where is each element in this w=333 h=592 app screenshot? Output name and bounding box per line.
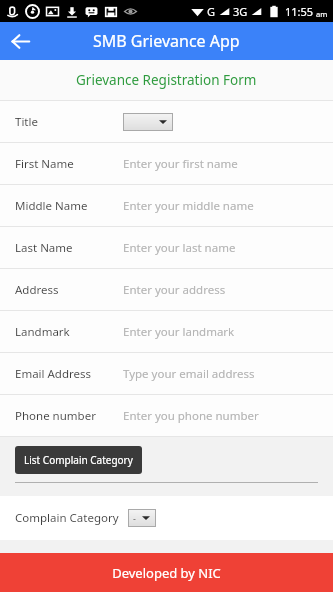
- button[interactable]: Last Name: [0, 227, 333, 268]
- staticText: First Name: [15, 156, 74, 172]
- button[interactable]: Address: [0, 269, 333, 310]
- button[interactable]: Middle Name: [0, 185, 333, 226]
- staticText: Last Name: [15, 240, 73, 256]
- staticText: Enter your first name: [123, 156, 238, 172]
- staticText: Enter your middle name: [123, 198, 254, 214]
- staticText: Enter your last name: [123, 240, 236, 256]
- staticText: am: [316, 9, 328, 19]
- staticText: Grievance Registration Form: [76, 71, 257, 89]
- staticText: List Complain Category: [24, 453, 133, 467]
- button[interactable]: Email Address: [0, 353, 333, 394]
- button[interactable]: First Name: [0, 143, 333, 184]
- staticText: Type your email address: [123, 366, 255, 382]
- button[interactable]: Title: [0, 101, 333, 142]
- staticText: Enter you phone number: [123, 408, 259, 424]
- staticText: Developed by NIC: [112, 564, 221, 582]
- staticText: SMB Grievance App: [93, 30, 240, 52]
- button[interactable]: Phone number: [0, 395, 333, 436]
- button[interactable]: Select option: [123, 113, 173, 131]
- button[interactable]: Complain Category: [0, 496, 333, 540]
- button[interactable]: List Complain Category: [15, 446, 142, 474]
- staticText: 11:55: [285, 4, 314, 19]
- staticText: Middle Name: [15, 198, 88, 214]
- staticText: Landmark: [15, 324, 70, 340]
- staticText: Enter your address: [123, 282, 226, 298]
- staticText: G: [207, 4, 216, 19]
- staticText: Title: [15, 114, 38, 130]
- staticText: Phone number: [15, 408, 96, 424]
- button[interactable]: Landmark: [0, 311, 333, 352]
- staticText: Email Address: [15, 366, 92, 382]
- staticText: Enter your landmark: [123, 324, 235, 340]
- staticText: 3G: [233, 4, 248, 19]
- staticText: -: [133, 512, 136, 524]
- staticText: Address: [15, 282, 59, 298]
- button[interactable]: Back: [7, 28, 33, 54]
- button[interactable]: Select option: [128, 509, 156, 527]
- staticText: Complain Category: [15, 510, 119, 526]
